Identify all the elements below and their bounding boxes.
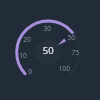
button[interactable]: Speed gauge — [0, 0, 100, 100]
